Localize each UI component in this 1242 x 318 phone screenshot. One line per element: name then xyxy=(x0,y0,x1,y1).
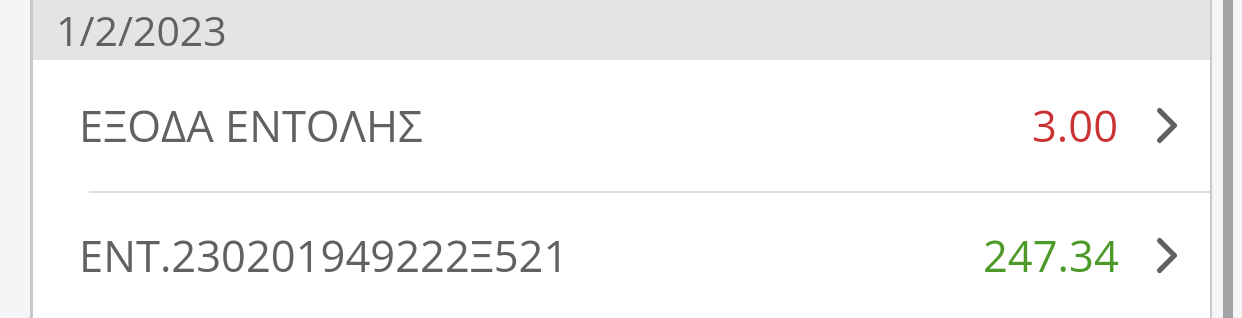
other: Open details xyxy=(1157,238,1177,273)
button[interactable]: ENT.230201949222Ξ521 xyxy=(33,193,1210,318)
other: Open details xyxy=(1157,108,1177,143)
staticText: 1/2/2023 xyxy=(56,2,227,58)
staticText: 247.34 xyxy=(983,226,1119,285)
staticText: ENT.230201949222Ξ521 xyxy=(79,226,569,285)
button[interactable]: ΕΞΟΔΑ ΕΝΤΟΛΗΣ xyxy=(33,60,1210,191)
staticText: 3.00 xyxy=(1032,96,1119,155)
staticText: ΕΞΟΔΑ ΕΝΤΟΛΗΣ xyxy=(79,96,423,155)
